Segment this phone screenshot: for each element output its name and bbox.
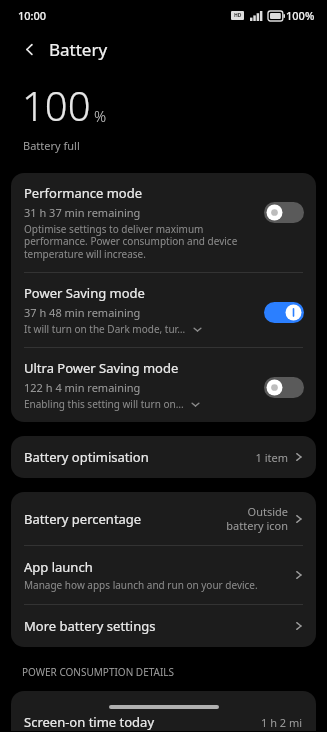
staticText: Ultra Power Saving mode xyxy=(24,359,179,377)
staticText: Outside battery icon xyxy=(208,504,288,533)
button[interactable]: Toggle on xyxy=(264,302,304,323)
staticText: More battery settings xyxy=(24,617,156,635)
staticText: Battery percentage xyxy=(24,510,142,528)
button[interactable]: App launch xyxy=(11,546,316,604)
staticText: Performance mode xyxy=(24,184,143,202)
staticText: 1 h 2 mi xyxy=(261,715,303,730)
button[interactable]: Power Saving mode xyxy=(11,273,316,347)
staticText: 31 h 37 min remaining xyxy=(24,205,141,220)
staticText: App launch xyxy=(24,558,93,576)
staticText: % xyxy=(94,106,107,126)
button[interactable]: Battery optimisation xyxy=(11,436,316,478)
button[interactable]: Toggle off xyxy=(264,202,304,223)
staticText: 37 h 48 min remaining xyxy=(24,305,141,320)
button[interactable]: Performance mode xyxy=(11,173,316,272)
staticText: 10:00 xyxy=(18,8,47,23)
staticText: 122 h 4 min remaining xyxy=(24,380,141,395)
staticText: POWER CONSUMPTION DETAILS xyxy=(22,665,175,679)
button[interactable]: Battery percentage xyxy=(11,492,316,545)
staticText: HD xyxy=(234,12,242,19)
staticText: Power Saving mode xyxy=(24,284,145,302)
staticText: Battery optimisation xyxy=(24,448,149,466)
button[interactable]: Screen-on time today xyxy=(11,691,316,731)
button[interactable]: Ultra Power Saving mode xyxy=(11,348,316,422)
staticText: It will turn on the Dark mode, tur… xyxy=(24,322,186,336)
staticText: Enabling this setting will turn on… xyxy=(24,397,184,411)
staticText: Manage how apps launch and run on your d… xyxy=(24,578,258,592)
button[interactable]: Back xyxy=(15,35,43,63)
button[interactable]: More battery settings xyxy=(11,605,316,647)
staticText: Screen-on time today xyxy=(24,713,261,731)
staticText: Optimise settings to deliver maximum per… xyxy=(24,222,256,261)
staticText: 1 item xyxy=(255,450,288,465)
staticText: 100 xyxy=(22,78,91,132)
button[interactable]: Toggle off xyxy=(264,377,304,398)
staticText: 100% xyxy=(286,8,315,23)
staticText: Battery xyxy=(49,38,108,61)
staticText: Battery full xyxy=(23,138,80,153)
